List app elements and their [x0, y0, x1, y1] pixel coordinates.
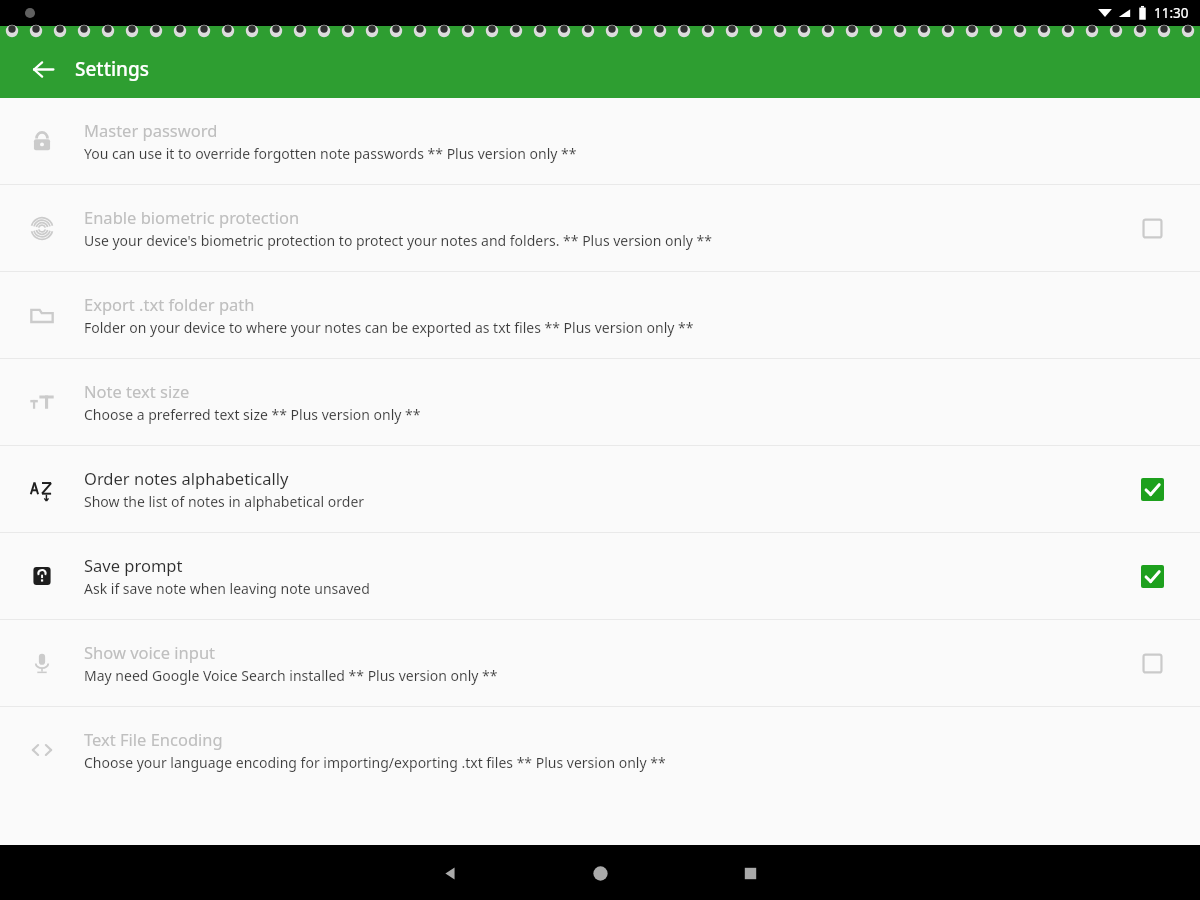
button[interactable]: Enable biometric protection — [0, 185, 1200, 271]
button[interactable]: Export .txt folder path — [0, 272, 1200, 358]
staticText: Choose your language encoding for import… — [84, 753, 666, 772]
staticText: Order notes alphabetically — [84, 467, 289, 489]
button[interactable]: Home — [576, 849, 624, 897]
staticText: Use your device's biometric protection t… — [84, 231, 713, 250]
staticText: Show voice input — [84, 641, 216, 663]
staticText: Save prompt — [84, 554, 183, 576]
staticText: Ask if save note when leaving note unsav… — [84, 579, 370, 598]
button[interactable]: Master password — [0, 98, 1200, 184]
button[interactable]: Enabled, checked — [1141, 478, 1164, 501]
button[interactable]: Save prompt — [0, 533, 1200, 619]
staticText: Enable biometric protection — [84, 206, 300, 228]
button[interactable]: Enabled, checked — [1141, 565, 1164, 588]
button[interactable]: Text File Encoding — [0, 707, 1200, 793]
staticText: Export .txt folder path — [84, 293, 255, 315]
staticText: Note text size — [84, 380, 190, 402]
button[interactable]: Order notes alphabetically — [0, 446, 1200, 532]
staticText: Text File Encoding — [84, 728, 223, 750]
button[interactable]: Disabled, unchecked — [1141, 217, 1164, 240]
staticText: Show the list of notes in alphabetical o… — [84, 492, 365, 511]
staticText: 11:30 — [1154, 4, 1189, 22]
button[interactable]: Note text size — [0, 359, 1200, 445]
staticText: Settings — [75, 56, 149, 82]
staticText: Choose a preferred text size ** Plus ver… — [84, 405, 421, 424]
button[interactable]: Recent apps — [726, 849, 774, 897]
button[interactable]: Back — [24, 50, 62, 88]
staticText: Folder on your device to where your note… — [84, 318, 694, 337]
staticText: You can use it to override forgotten not… — [84, 144, 577, 163]
button[interactable]: Back — [426, 849, 474, 897]
staticText: May need Google Voice Search installed *… — [84, 666, 498, 685]
button[interactable]: Disabled, unchecked — [1141, 652, 1164, 675]
staticText: Master password — [84, 119, 218, 141]
button[interactable]: Show voice input — [0, 620, 1200, 706]
